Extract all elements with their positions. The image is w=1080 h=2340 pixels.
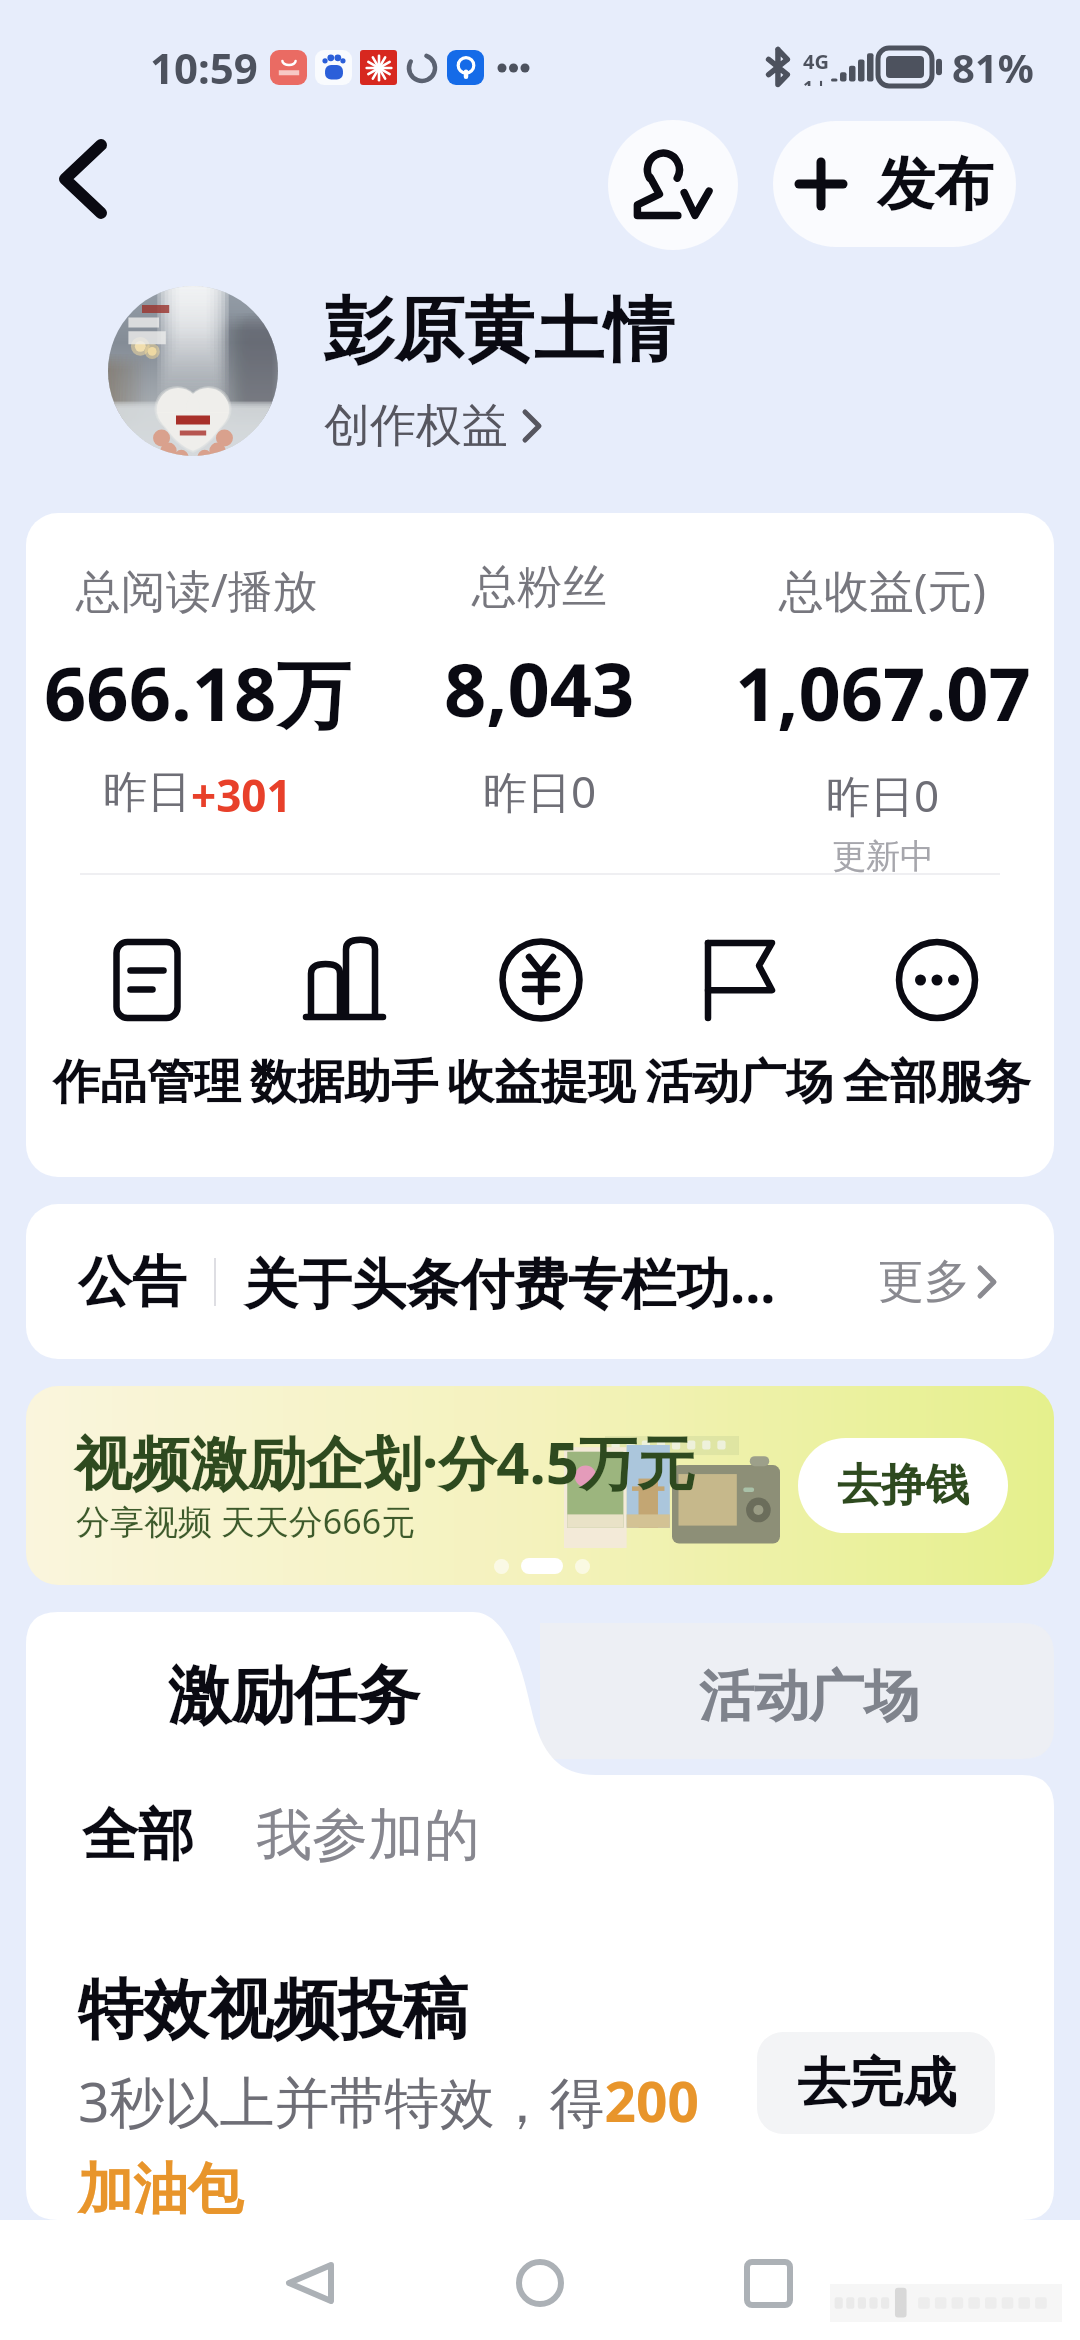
button[interactable]: 激励任务 (26, 1612, 546, 1775)
staticText: 1,067.07 (735, 642, 1031, 743)
button[interactable]: 数据助手 (245, 939, 442, 1112)
staticText: 4G (803, 48, 829, 75)
button[interactable]: 活动广场 (540, 1623, 1054, 1770)
button[interactable]: Fans (608, 120, 738, 250)
staticText: 活动广场 (645, 1053, 833, 1112)
button[interactable]: 总收益(元) (711, 559, 1054, 878)
button[interactable]: 全部服务 (838, 939, 1036, 1112)
staticText: 去挣钱 (837, 1458, 969, 1513)
button[interactable]: 活动广场 (640, 939, 838, 1112)
staticText: 昨日 (103, 765, 191, 820)
staticText: 更新中 (832, 835, 934, 878)
staticText: 666.18万 (44, 642, 351, 743)
button[interactable]: 发布 (773, 121, 1016, 247)
staticText: 作品管理 (53, 1053, 241, 1112)
button[interactable]: Home (492, 2235, 588, 2331)
staticText: 特效视频投稿 (78, 1969, 468, 2051)
staticText: 彭原黄土情 (324, 287, 674, 375)
staticText: 8,043 (444, 638, 635, 739)
button[interactable]: 总阅读/播放 (26, 559, 368, 825)
staticText: 总粉丝 (472, 559, 607, 616)
button[interactable]: 全部 (82, 1800, 194, 1871)
staticText: 昨日0 (483, 761, 597, 821)
button[interactable]: 彭原黄土情 (108, 286, 674, 456)
button[interactable]: Back (30, 126, 136, 232)
button[interactable]: 去挣钱 (798, 1438, 1008, 1533)
button[interactable]: 作品管理 (48, 939, 245, 1112)
button[interactable]: 去完成 (757, 2032, 995, 2134)
staticText: 3秒以上并带特效，得200 加油包 (78, 2063, 699, 2225)
staticText: 我参加的 (256, 1800, 480, 1871)
staticText: 关于头条付费专栏功... (244, 1245, 776, 1319)
button[interactable]: 视频激励企划·分4.5万元 (26, 1386, 1054, 1585)
staticText: 公告 (78, 1248, 186, 1316)
button[interactable]: 收益提现 (442, 939, 640, 1112)
staticText: 视频激励企划·分4.5万元 (74, 1422, 695, 1501)
staticText: 发布 (877, 148, 993, 221)
staticText: 总收益(元) (779, 559, 987, 620)
staticText: 创作权益 (324, 397, 508, 455)
button[interactable]: 公告 (26, 1204, 1054, 1359)
staticText: 总阅读/播放 (76, 559, 318, 620)
staticText: +301 (191, 765, 292, 825)
staticText: 分享视频 天天分666元 (76, 1498, 416, 1544)
staticText: 去完成 (797, 2050, 956, 2117)
staticText: 1↓ (803, 75, 829, 86)
staticText: 10:59 (150, 39, 258, 96)
staticText: 收益提现 (447, 1053, 635, 1112)
button[interactable]: 我参加的 (256, 1800, 480, 1871)
staticText: 数据助手 (250, 1053, 438, 1112)
staticText: 活动广场 (699, 1662, 919, 1731)
staticText: 81% (952, 40, 1034, 94)
button[interactable]: 总粉丝 (368, 559, 711, 821)
staticText: 全部服务 (843, 1053, 1031, 1112)
button[interactable]: Recents (720, 2235, 816, 2331)
staticText: 更多 (878, 1253, 970, 1311)
staticText: 全部 (82, 1800, 194, 1871)
staticText: 激励任务 (168, 1656, 420, 1735)
button[interactable]: Back (262, 2235, 358, 2331)
staticText: 昨日0 (826, 765, 940, 825)
